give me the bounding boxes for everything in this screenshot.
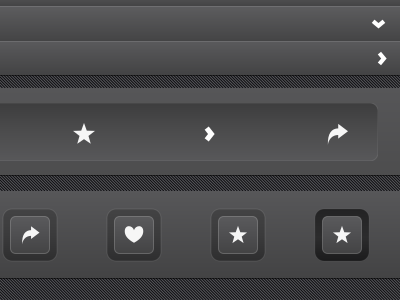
button[interactable]: Next <box>178 105 240 163</box>
button[interactable]: Collapse <box>0 6 400 41</box>
button[interactable]: Share <box>3 209 57 261</box>
button[interactable]: Favourite <box>211 209 265 261</box>
button[interactable]: Favourite <box>53 105 115 163</box>
button[interactable]: Like <box>107 209 161 261</box>
button[interactable]: Share <box>306 105 368 163</box>
button[interactable]: Favourited <box>315 209 369 261</box>
button[interactable]: Disclose <box>0 41 400 76</box>
